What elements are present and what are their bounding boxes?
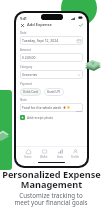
staticText: Add Expense [27,22,52,27]
staticText: Food for the whole week [22,105,62,110]
staticText: Wallet [40,155,48,159]
staticText: Groceries [22,72,38,77]
staticText: Bank/UPI [47,90,61,94]
button[interactable]: $ 240.00 [20,53,83,62]
button[interactable]: Debit Card [20,88,41,96]
staticText: Amount [20,48,31,52]
button[interactable]: Add receipt photo [20,114,83,121]
staticText: 23/60 [76,109,83,112]
staticText: Customize tracking to meet your financia… [14,191,88,207]
staticText: Personalized Expense Management [2,168,101,191]
button[interactable]: Save [78,22,84,28]
button[interactable]: Bank/UPI [44,88,64,96]
staticText: $ 240.00 [22,55,36,60]
staticText: Category [20,65,33,69]
button[interactable]: Home [23,149,33,159]
staticText: Home [24,155,32,159]
staticText: Payment [20,82,33,86]
button[interactable]: Stats [56,149,64,159]
staticText: Add receipt photo [27,116,54,120]
button[interactable]: Groceries [20,70,83,79]
staticText: Stats [57,155,63,159]
button[interactable]: Food for the whole week [20,103,83,112]
button[interactable]: Tuesday, Sept 12, 2024 [20,36,83,45]
staticText: 9:41 [20,16,27,21]
button[interactable]: Wallet [39,149,49,159]
button[interactable]: Profile [70,149,80,159]
staticText: Date [20,31,27,35]
staticText: Note [20,98,27,102]
button[interactable]: Close [19,22,25,28]
staticText: Tuesday, Sept 12, 2024 [22,38,59,43]
staticText: Debit Card [23,90,38,94]
staticText: Profile [71,155,79,159]
